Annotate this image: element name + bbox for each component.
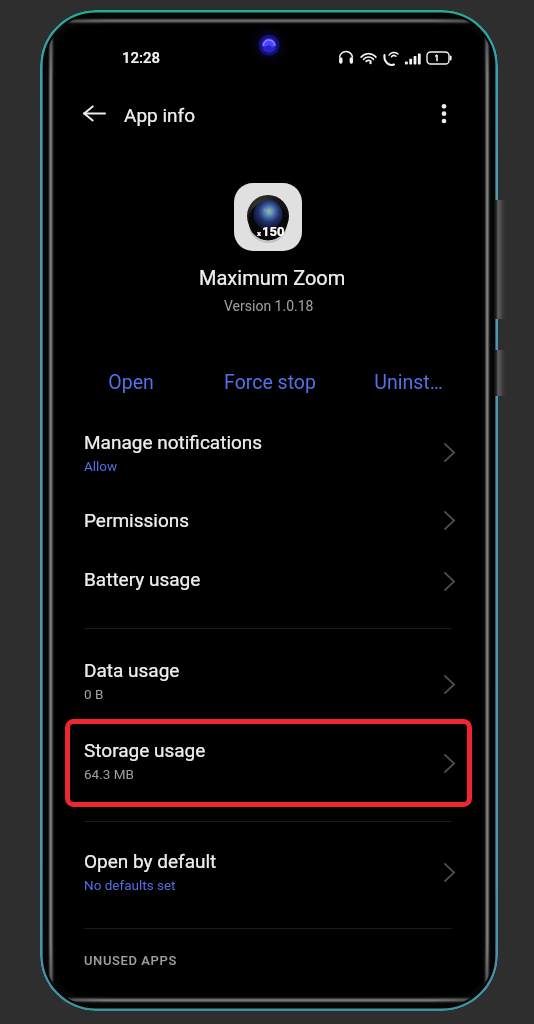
staticText: 0 B: [84, 686, 104, 702]
button[interactable]: Manage notifications: [50, 416, 490, 492]
button[interactable]: App info: [115, 98, 215, 132]
button[interactable]: Back: [80, 97, 109, 130]
staticText: UNUSED APPS: [84, 953, 177, 968]
staticText: x: [257, 229, 262, 238]
staticText: Battery usage: [84, 568, 201, 590]
staticText: Uninst…: [374, 371, 443, 394]
staticText: 12:28: [122, 49, 161, 67]
staticText: Open by default: [84, 850, 217, 872]
button[interactable]: More options: [432, 98, 456, 129]
staticText: No defaults set: [84, 877, 176, 893]
staticText: Allow: [84, 458, 118, 474]
staticText: Open: [108, 371, 154, 394]
staticText: Version 1.0.18: [224, 298, 314, 314]
button[interactable]: Storage usage: [50, 723, 490, 799]
staticText: App info: [124, 104, 195, 126]
staticText: Permissions: [84, 509, 190, 531]
button[interactable]: Battery usage: [50, 553, 490, 615]
button[interactable]: Force stop: [200, 364, 339, 400]
staticText: 150: [262, 224, 285, 239]
staticText: 64.3 MB: [84, 766, 134, 782]
staticText: Data usage: [84, 659, 180, 681]
staticText: Maximum Zoom: [199, 266, 346, 289]
staticText: Manage notifications: [84, 431, 263, 453]
button[interactable]: Data usage: [50, 644, 490, 720]
staticText: Force stop: [224, 371, 316, 394]
button[interactable]: Uninst…: [339, 364, 478, 400]
staticText: Storage usage: [84, 739, 206, 761]
button[interactable]: Open by default: [50, 835, 490, 911]
button[interactable]: Permissions: [50, 492, 490, 554]
button[interactable]: Open: [62, 364, 200, 400]
